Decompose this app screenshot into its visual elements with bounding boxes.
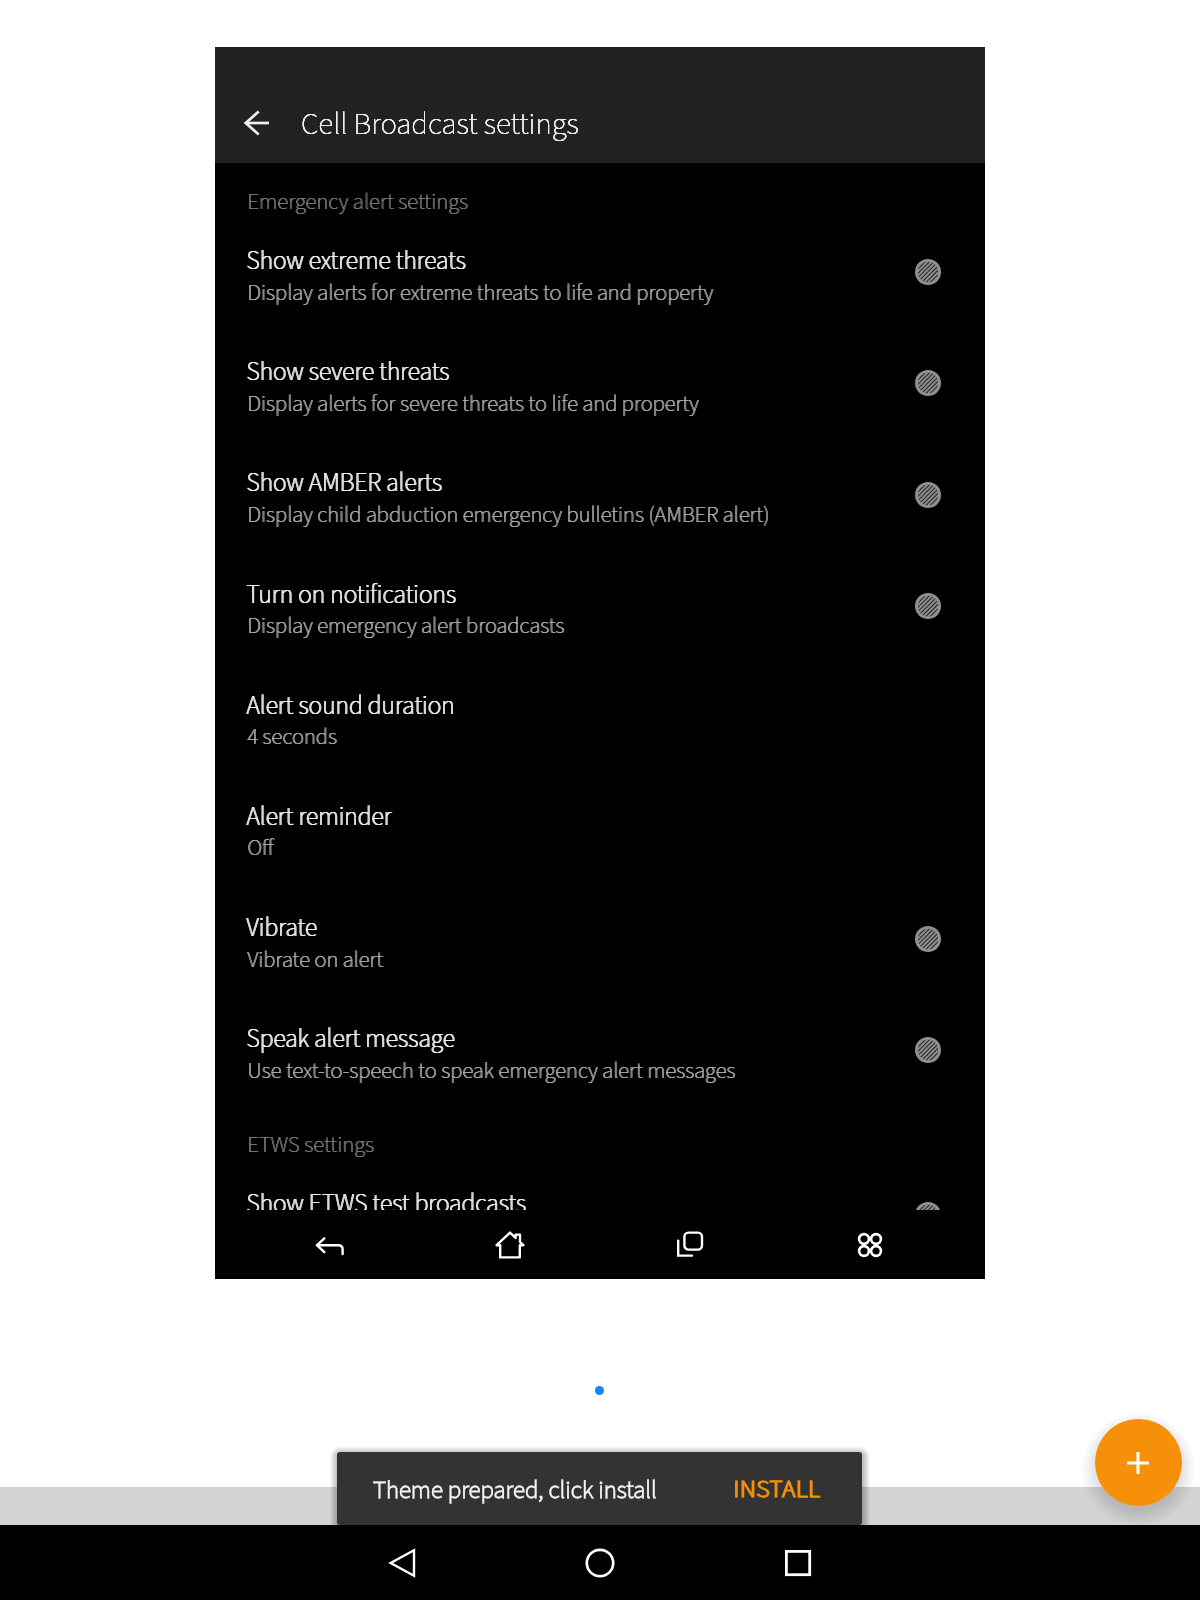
button[interactable]: Navigate up: [229, 95, 285, 151]
staticText: Alert reminder: [247, 799, 393, 835]
staticText: Turn on notifications: [246, 577, 456, 613]
staticText: Vibrate on alert: [247, 944, 383, 976]
button[interactable]: Add: [1095, 1419, 1182, 1506]
staticText: Show ETWS test broadcasts: [246, 1186, 526, 1222]
staticText: Show severe threats: [246, 354, 449, 390]
button[interactable]: Home: [564, 1527, 636, 1599]
button[interactable]: Home: [420, 1210, 600, 1279]
staticText: Show AMBER alerts: [247, 465, 443, 501]
button[interactable]: [215, 782, 985, 870]
staticText: Display alerts for extreme threats to li…: [248, 277, 714, 309]
staticText: ETWS settings: [247, 1129, 374, 1161]
button[interactable]: Recent apps: [600, 1210, 780, 1279]
button[interactable]: Recent apps: [762, 1527, 834, 1599]
staticText: Off: [247, 832, 274, 864]
button[interactable]: [215, 337, 985, 425]
staticText: Vibrate: [247, 910, 318, 946]
button[interactable]: [215, 1168, 985, 1230]
staticText: Off: [248, 832, 275, 864]
button[interactable]: [215, 226, 985, 314]
staticText: Display child abduction emergency bullet…: [248, 499, 770, 531]
staticText: Use text-to-speech to speak emergency al…: [247, 1055, 735, 1087]
button[interactable]: Install: [716, 1452, 838, 1525]
staticText: Show extreme threats: [247, 243, 467, 279]
staticText: Theme prepared, click install: [373, 1473, 657, 1508]
staticText: Vibrate on alert: [248, 944, 384, 976]
staticText: Speak alert message: [246, 1021, 455, 1057]
button[interactable]: Back: [367, 1527, 439, 1599]
staticText: Display child abduction emergency bullet…: [247, 499, 769, 531]
staticText: Show ETWS test broadcasts: [247, 1186, 527, 1222]
staticText: INSTALL: [734, 1471, 821, 1507]
button[interactable]: [215, 1004, 985, 1092]
staticText: Display alerts for severe threats to lif…: [247, 388, 699, 420]
staticText: Emergency alert settings: [247, 186, 468, 218]
button[interactable]: [215, 559, 985, 647]
staticText: ETWS settings: [248, 1129, 375, 1161]
staticText: Vibrate: [246, 910, 317, 946]
staticText: Display alerts for severe threats to lif…: [248, 388, 700, 420]
staticText: Cell Broadcast settings: [301, 102, 579, 146]
staticText: Display emergency alert broadcasts: [248, 610, 565, 642]
staticText: Show AMBER alerts: [246, 465, 442, 501]
button[interactable]: [215, 893, 985, 981]
staticText: Alert sound duration: [246, 688, 455, 724]
staticText: Alert reminder: [246, 799, 392, 835]
staticText: Speak alert message: [247, 1021, 456, 1057]
button[interactable]: [215, 448, 985, 536]
button[interactable]: Theme prepared, click install: [337, 1452, 862, 1525]
staticText: Alert sound duration: [247, 688, 456, 724]
staticText: 4 seconds: [248, 721, 338, 753]
button[interactable]: Back: [240, 1210, 420, 1279]
button[interactable]: All apps: [780, 1210, 960, 1279]
staticText: Display alerts for extreme threats to li…: [247, 277, 713, 309]
button[interactable]: [215, 670, 985, 758]
staticText: Emergency alert settings: [248, 186, 469, 218]
staticText: Display emergency alert broadcasts: [247, 610, 564, 642]
staticText: Use text-to-speech to speak emergency al…: [248, 1055, 736, 1087]
staticText: INSTALL: [733, 1471, 820, 1507]
staticText: Show extreme threats: [246, 243, 466, 279]
staticText: 4 seconds: [247, 721, 337, 753]
staticText: Turn on notifications: [247, 577, 457, 613]
staticText: Cell Broadcast settings: [301, 102, 579, 146]
staticText: Show severe threats: [247, 354, 450, 390]
